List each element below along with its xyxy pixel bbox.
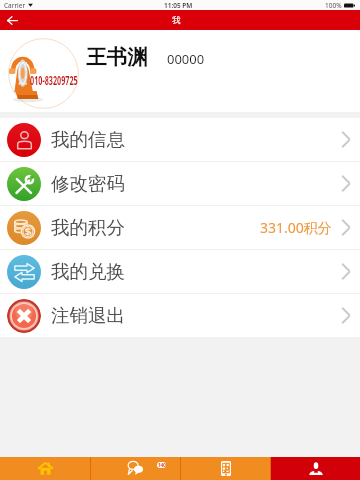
- button[interactable]: Scan: [181, 457, 270, 480]
- staticText: 王书渊: [86, 44, 148, 70]
- button[interactable]: Messages: [91, 457, 180, 480]
- button[interactable]: 我的兑换: [0, 250, 360, 293]
- staticText: 140: [158, 462, 166, 468]
- staticText: 注销退出: [51, 304, 125, 327]
- staticText: 00000: [167, 50, 205, 68]
- staticText: 331.00积分: [260, 218, 332, 237]
- staticText: 我: [172, 15, 181, 26]
- button[interactable]: 我的信息: [0, 118, 360, 161]
- staticText: Carrier: [4, 1, 26, 10]
- staticText: 010-83209725: [30, 71, 78, 89]
- staticText: 我的积分: [51, 216, 125, 239]
- button[interactable]: Back: [0, 10, 24, 30]
- staticText: 我的兑换: [51, 260, 125, 283]
- staticText: 修改密码: [51, 172, 125, 195]
- button[interactable]: 修改密码: [0, 162, 360, 205]
- button[interactable]: 我的积分: [0, 206, 360, 249]
- staticText: 11:05 PM: [164, 1, 193, 10]
- button[interactable]: Home: [0, 457, 90, 480]
- button[interactable]: 注销退出: [0, 294, 360, 337]
- staticText: 我的信息: [51, 128, 125, 151]
- button[interactable]: Profile: [271, 457, 360, 480]
- staticText: 100%: [325, 1, 342, 10]
